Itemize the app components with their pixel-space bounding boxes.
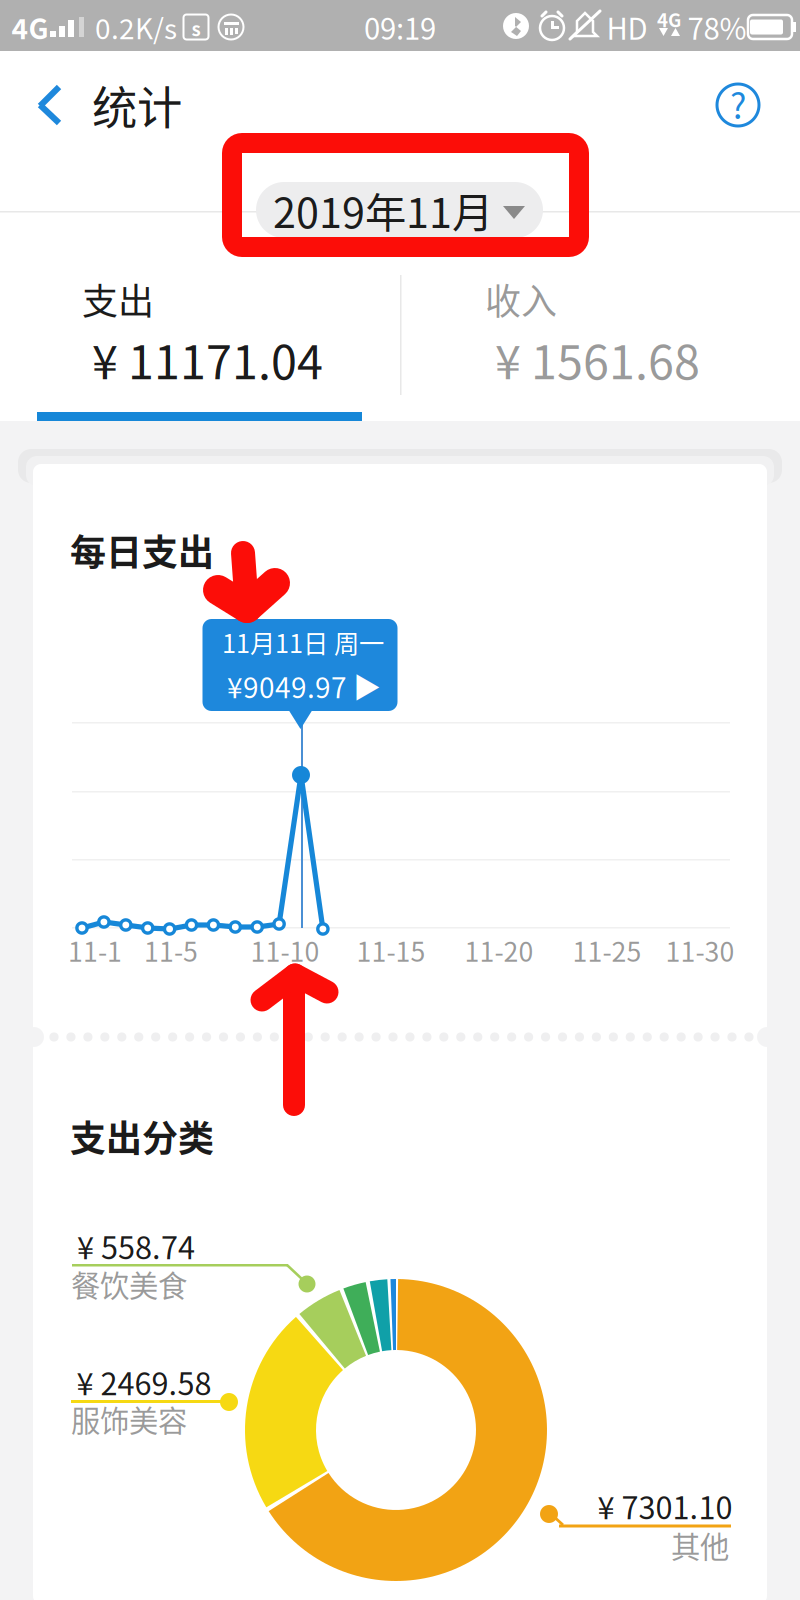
- staticText: s: [191, 14, 200, 41]
- staticText: ¥ 7301.10: [597, 1484, 732, 1528]
- staticText: 78%: [687, 6, 746, 48]
- staticText: 收入: [485, 273, 557, 325]
- staticText: 餐饮美食: [71, 1263, 187, 1305]
- staticText: 4G: [657, 5, 681, 32]
- button[interactable]: Back: [0, 62, 90, 152]
- staticText: HD: [606, 6, 647, 48]
- staticText: 统计: [92, 72, 182, 138]
- staticText: 11-15: [356, 931, 425, 969]
- staticText: 4G: [11, 7, 48, 47]
- button[interactable]: 收入: [485, 273, 795, 383]
- staticText: 支出: [82, 273, 154, 325]
- staticText: 09:19: [364, 6, 436, 48]
- staticText: 每日支出: [70, 524, 214, 576]
- staticText: 2019年11月: [273, 180, 493, 240]
- staticText: ¥ 11171.04: [82, 325, 323, 393]
- staticText: 11-10: [250, 931, 319, 969]
- staticText: 0.2K/s: [95, 7, 177, 47]
- staticText: 11-25: [572, 931, 641, 969]
- staticText: ¥9049.97 ▶: [227, 666, 381, 706]
- staticText: ¥ 1561.68: [485, 325, 700, 393]
- staticText: 11-1: [68, 931, 122, 969]
- staticText: 11-5: [144, 931, 198, 969]
- staticText: 11-20: [464, 931, 533, 969]
- staticText: 11月11日 周一: [222, 624, 384, 660]
- button[interactable]: 2019年11月: [256, 182, 543, 238]
- staticText: 其他: [671, 1524, 729, 1566]
- staticText: 支出分类: [70, 1110, 214, 1162]
- button[interactable]: Help: [708, 75, 768, 135]
- staticText: ¥ 558.74: [77, 1224, 195, 1268]
- staticText: 11-30: [665, 931, 734, 969]
- staticText: ¥ 2469.58: [76, 1360, 211, 1404]
- button[interactable]: 支出: [82, 273, 412, 383]
- staticText: 服饰美容: [71, 1398, 187, 1440]
- staticText: ?: [730, 79, 746, 129]
